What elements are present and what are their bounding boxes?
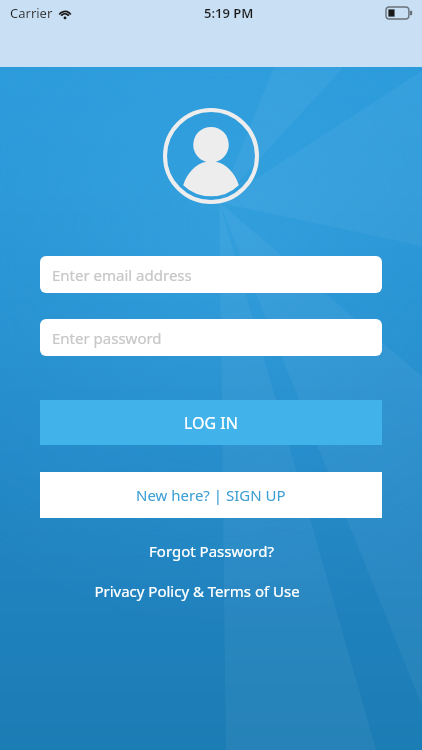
button[interactable]: Enter password	[40, 319, 382, 356]
button[interactable]: Enter email address	[40, 256, 382, 293]
button[interactable]: New here? | SIGN UP	[40, 472, 382, 518]
staticText: LOG IN	[184, 412, 238, 434]
staticText: New here? | SIGN UP	[136, 485, 286, 505]
button[interactable]: Privacy Policy & Terms of Use	[0, 581, 422, 601]
other: Profile avatar	[163, 108, 259, 204]
staticText: Forgot Password?	[149, 541, 274, 561]
staticText: Enter password	[52, 328, 162, 348]
staticText: Privacy Policy & Terms of Use	[94, 581, 300, 601]
staticText: Enter email address	[52, 265, 192, 285]
button[interactable]: LOG IN	[40, 400, 382, 445]
staticText: Carrier	[10, 4, 53, 22]
staticText: 5:19 PM	[204, 4, 254, 22]
button[interactable]: Forgot Password?	[0, 541, 422, 561]
